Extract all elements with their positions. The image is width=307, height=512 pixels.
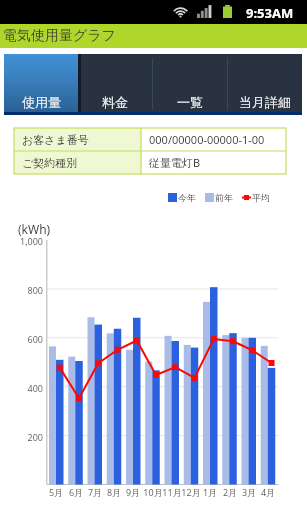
staticText: 料金	[102, 94, 128, 110]
staticText: 当月詳細	[239, 94, 291, 110]
other: Battery	[222, 5, 233, 18]
button[interactable]: 当月詳細	[227, 54, 302, 112]
staticText: 9月	[120, 486, 146, 498]
staticText: 9:53AM	[246, 4, 294, 22]
staticText: 従量電灯B	[149, 155, 201, 170]
staticText: 1月	[197, 486, 223, 498]
staticText: 800	[0, 284, 43, 296]
staticText: 2月	[217, 486, 243, 498]
staticText: 一覧	[177, 94, 203, 110]
staticText: 11月	[159, 486, 185, 498]
staticText: ご契約種別	[22, 156, 78, 170]
button[interactable]: 一覧	[152, 54, 227, 112]
staticText: 12月	[178, 486, 204, 498]
staticText: (kWh)	[18, 221, 51, 237]
other: Wi-Fi	[172, 5, 189, 18]
staticText: 電気使用量グラフ	[3, 27, 116, 45]
button[interactable]: 料金	[78, 54, 152, 112]
staticText: 前年	[215, 192, 233, 203]
staticText: お客さま番号	[22, 133, 89, 147]
other: Signal	[197, 5, 212, 18]
staticText: 000/00000-00000-1-00	[149, 132, 265, 147]
staticText: 1,000	[0, 235, 43, 247]
staticText: 5月	[43, 486, 69, 498]
staticText: 600	[0, 333, 43, 345]
staticText: 200	[0, 431, 43, 443]
staticText: 4月	[255, 486, 281, 498]
staticText: 6月	[63, 486, 89, 498]
staticText: 今年	[178, 192, 196, 203]
staticText: 平均	[252, 192, 270, 203]
staticText: 7月	[82, 486, 108, 498]
staticText: 10月	[140, 486, 166, 498]
staticText: 使用量	[22, 94, 61, 110]
button[interactable]: 使用量	[4, 54, 78, 112]
staticText: 8月	[101, 486, 127, 498]
staticText: 3月	[236, 486, 262, 498]
staticText: 400	[0, 382, 43, 394]
